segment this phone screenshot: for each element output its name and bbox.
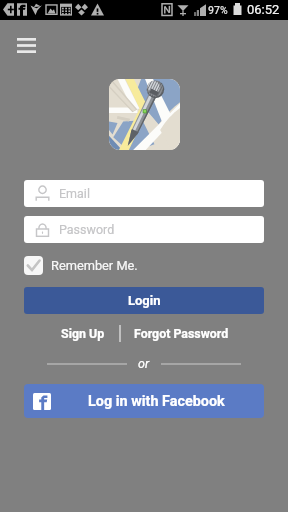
staticText: Email xyxy=(59,186,90,201)
staticText: Forgot Password xyxy=(134,326,229,341)
button[interactable]: Password xyxy=(24,216,264,243)
button[interactable]: Log in with Facebook xyxy=(24,384,264,418)
button[interactable]: Login xyxy=(24,287,264,314)
staticText: Log in with Facebook xyxy=(88,393,225,410)
staticText: Remember Me. xyxy=(51,258,138,273)
staticText: 97% xyxy=(208,4,228,16)
button[interactable]: Forgot Password xyxy=(126,324,237,343)
button[interactable]: Remember Me. xyxy=(24,256,138,275)
staticText: Sign Up xyxy=(61,326,105,341)
staticText: 06:52 xyxy=(247,2,280,17)
staticText: Login xyxy=(128,293,161,308)
staticText: Password xyxy=(59,222,115,237)
button[interactable]: Email xyxy=(24,180,264,207)
staticText: or xyxy=(138,356,150,371)
button[interactable]: Sign Up xyxy=(52,324,114,343)
button[interactable]: Menu xyxy=(17,38,36,53)
